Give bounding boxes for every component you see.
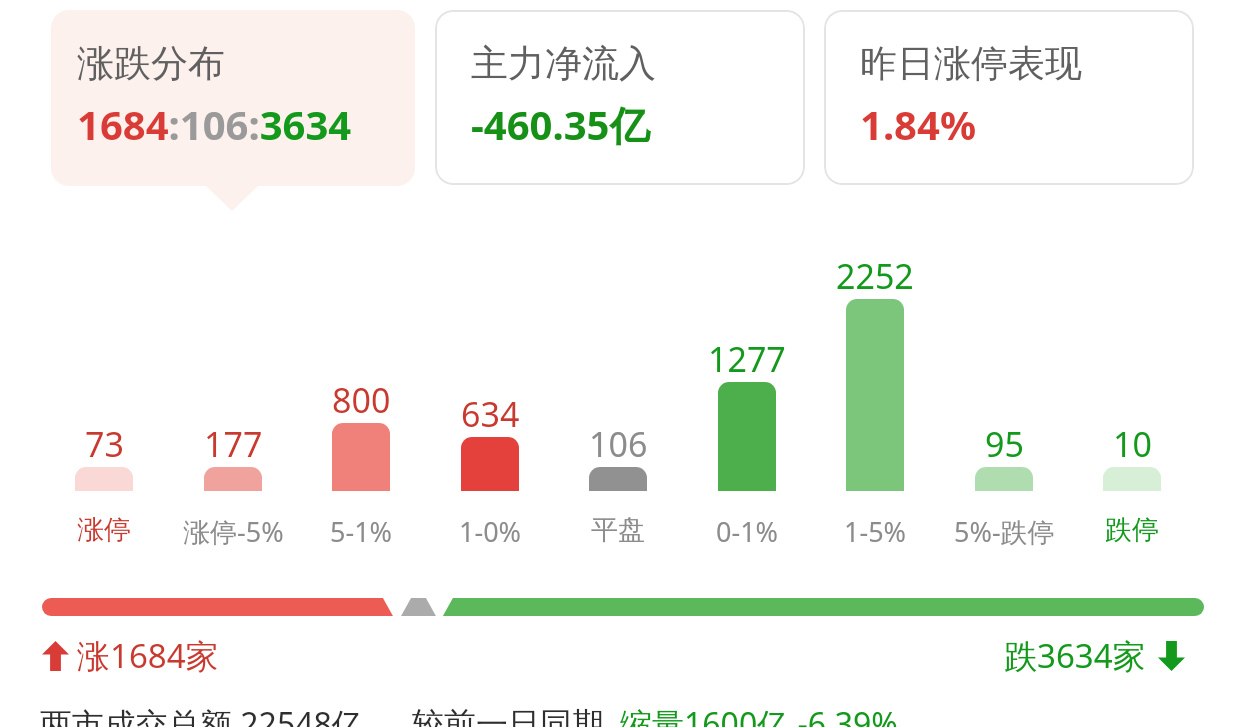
staticText: 主力净流入 xyxy=(471,40,656,87)
staticText: 涨跌分布 xyxy=(77,40,225,87)
staticText: 2252 xyxy=(836,253,914,299)
staticText: 177 xyxy=(204,421,263,467)
button[interactable] xyxy=(975,467,1033,491)
staticText: 涨停-5% xyxy=(183,513,284,550)
staticText: 1684:106:3634 xyxy=(77,97,352,151)
staticText: 昨日涨停表现 xyxy=(860,40,1082,87)
other: 上涨家数 xyxy=(42,641,69,671)
button[interactable] xyxy=(42,598,1204,616)
button[interactable]: 昨日涨停表现 xyxy=(824,10,1194,185)
staticText: 5%-跌停 xyxy=(954,513,1055,550)
staticText: 涨1684家 xyxy=(77,633,219,678)
button[interactable] xyxy=(461,437,519,491)
button[interactable] xyxy=(589,467,647,491)
button[interactable] xyxy=(332,423,390,491)
staticText: 73 xyxy=(85,421,124,467)
button[interactable]: 主力净流入 xyxy=(435,10,805,185)
button[interactable]: 上涨家数 xyxy=(42,633,219,678)
button[interactable] xyxy=(204,467,262,491)
staticText: 95 xyxy=(985,421,1024,467)
staticText: 1.84% xyxy=(860,97,976,151)
staticText: 1277 xyxy=(708,336,786,382)
staticText: 800 xyxy=(332,377,391,423)
other: 下跌家数 xyxy=(1158,641,1185,671)
staticText: -460.35亿 xyxy=(471,97,650,152)
button[interactable] xyxy=(1103,467,1161,491)
staticText: 0-1% xyxy=(716,513,779,550)
button[interactable]: 跌3634家 xyxy=(1004,633,1185,678)
staticText: 平盘 xyxy=(591,513,645,547)
staticText: 1-0% xyxy=(459,513,522,550)
staticText: 5-1% xyxy=(330,513,393,550)
staticText: 两市成交总额 22548亿 xyxy=(40,702,364,727)
staticText: 106 xyxy=(589,421,648,467)
staticText: 较前一日同期 xyxy=(412,704,604,727)
staticText: 缩量1600亿 -6.39% xyxy=(620,702,898,727)
staticText: 涨停 xyxy=(77,513,131,547)
button[interactable] xyxy=(718,382,776,491)
staticText: 634 xyxy=(461,391,520,437)
staticText: 1-5% xyxy=(844,513,907,550)
staticText: 10 xyxy=(1113,421,1152,467)
staticText: 跌3634家 xyxy=(1004,633,1146,678)
staticText: 跌停 xyxy=(1105,513,1159,547)
button[interactable] xyxy=(846,299,904,491)
button[interactable] xyxy=(75,467,133,491)
button[interactable]: 涨跌分布 xyxy=(51,10,415,186)
